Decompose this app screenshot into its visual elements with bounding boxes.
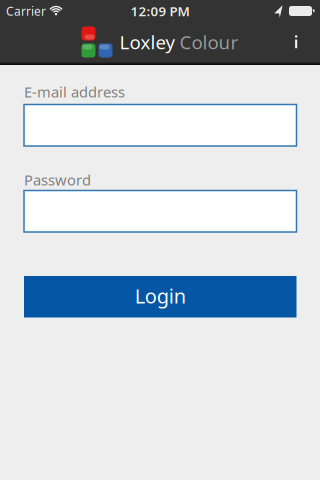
- staticText: 12:09 PM: [130, 2, 189, 20]
- staticText: Password: [24, 170, 91, 189]
- button[interactable]: Login: [24, 276, 296, 317]
- staticText: Carrier: [6, 3, 46, 19]
- staticText: Loxley: [119, 30, 175, 54]
- staticText: Login: [135, 282, 186, 309]
- staticText: Colour: [179, 30, 238, 54]
- staticText: E-mail address: [24, 82, 125, 101]
- button[interactable]: [276, 20, 320, 64]
